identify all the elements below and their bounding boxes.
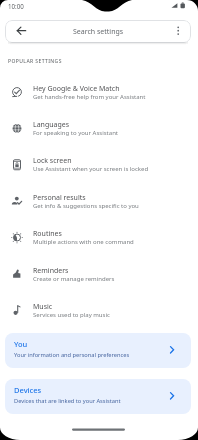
- button[interactable]: Hey Google & Voice Match: [0, 82, 198, 118]
- staticText: Devices that are linked to your Assistan…: [14, 397, 121, 405]
- button[interactable]: Personal results: [0, 191, 198, 227]
- button[interactable]: Devices: [5, 379, 191, 414]
- button[interactable]: Reminders: [0, 264, 198, 300]
- staticText: 10:00: [8, 2, 24, 10]
- button[interactable]: Search settings: [5, 20, 191, 43]
- button[interactable]: Lock screen: [0, 154, 198, 190]
- staticText: Devices: [14, 385, 42, 395]
- staticText: POPULAR SETTINGS: [8, 58, 62, 65]
- button[interactable]: You: [5, 333, 191, 368]
- staticText: Your information and personal preference…: [14, 351, 130, 359]
- staticText: Hey Google & Voice Match: [33, 84, 120, 94]
- staticText: Multiple actions with one command: [33, 238, 134, 246]
- staticText: Personal results: [33, 193, 86, 203]
- button[interactable]: Routines: [0, 227, 198, 263]
- staticText: Languages: [33, 120, 70, 130]
- staticText: Routines: [33, 229, 62, 239]
- staticText: Services used to play music: [33, 311, 110, 319]
- staticText: Use Assistant when your screen is locked: [33, 165, 149, 173]
- staticText: Reminders: [33, 266, 69, 276]
- staticText: Get hands-free help from your Assistant: [33, 93, 146, 101]
- button[interactable]: Languages: [0, 118, 198, 154]
- button[interactable]: Music: [0, 300, 198, 336]
- staticText: For speaking to your Assistant: [33, 129, 119, 137]
- staticText: Get info & suggestions specific to you: [33, 202, 139, 210]
- staticText: Create or manage reminders: [33, 275, 115, 283]
- staticText: You: [14, 339, 28, 349]
- staticText: Music: [33, 302, 53, 312]
- staticText: Lock screen: [33, 156, 72, 166]
- staticText: Search settings: [73, 27, 124, 37]
